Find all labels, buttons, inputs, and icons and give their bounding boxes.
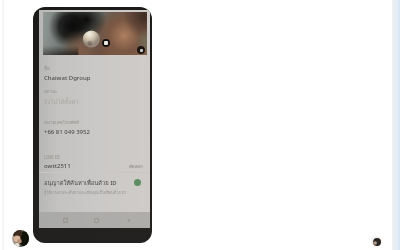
staticText: ยังไม่ได้ตั้งค่า <box>44 97 79 107</box>
button[interactable]: Back <box>123 215 134 226</box>
button[interactable]: สถานะ <box>44 88 144 107</box>
button[interactable]: Contact avatar <box>371 236 382 247</box>
button[interactable]: คัดลอก <box>128 162 144 171</box>
button[interactable]: Change cover photo <box>102 39 110 47</box>
staticText: หมายเลขโทรศัพท์ <box>44 119 80 126</box>
staticText: Chaiwat Dgroup <box>44 74 91 82</box>
button[interactable]: Recent apps <box>60 215 71 226</box>
staticText: ผู้ใช้งานอาจจะค้นหาและเพิ่มคุณเป็นเพื่อน… <box>44 190 126 196</box>
button[interactable]: ชื่อ <box>44 65 144 82</box>
button[interactable]: Change profile photo <box>137 46 145 54</box>
staticText: อนุญาตให้ค้นหาเพื่อนด้วย ID <box>44 178 117 187</box>
staticText: owtt2511 <box>44 162 71 170</box>
staticText: ชื่อ <box>44 65 50 72</box>
staticText: LINE ID <box>44 154 60 160</box>
button[interactable]: หมายเลขโทรศัพท์ <box>44 119 144 136</box>
button[interactable]: อนุญาตให้ค้นหาเพื่อนด้วย ID <box>39 176 150 198</box>
button[interactable]: Photo of a phone screen <box>33 7 152 243</box>
staticText: +66 81 049 3952 <box>44 128 90 136</box>
button[interactable]: Sender profile photo <box>12 230 29 247</box>
button[interactable]: LINE ID <box>44 154 144 170</box>
button[interactable]: Home <box>91 215 102 226</box>
staticText: สถานะ <box>44 88 58 95</box>
